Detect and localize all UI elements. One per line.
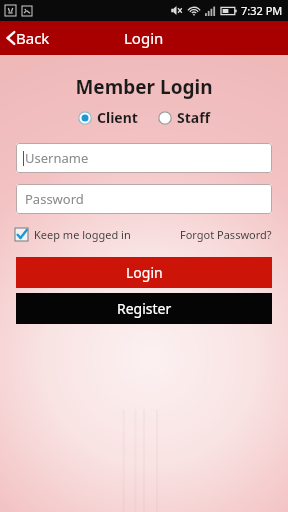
button[interactable]: Login (16, 257, 272, 288)
staticText: Forgot Password? (180, 227, 272, 242)
staticText: Username (25, 149, 89, 167)
staticText: Login (124, 28, 164, 48)
button[interactable]: Username (16, 143, 272, 173)
button[interactable]: Register (16, 293, 272, 324)
button[interactable]: Back (0, 24, 60, 52)
staticText: Password (25, 190, 84, 208)
staticText: Member Login (0, 74, 288, 100)
staticText: 7:32 PM (241, 3, 283, 18)
button[interactable]: Client (76, 106, 140, 129)
staticText: Keep me logged in (34, 227, 131, 242)
staticText: Back (16, 28, 50, 48)
staticText: Register (117, 299, 172, 318)
button[interactable]: Forgot Password? (179, 224, 273, 245)
button[interactable]: Keep me logged in (15, 225, 131, 244)
button[interactable]: Password (16, 184, 272, 214)
staticText: Login (126, 263, 163, 282)
staticText: Staff (177, 108, 210, 127)
button[interactable]: Staff (156, 106, 212, 129)
staticText: Client (97, 108, 138, 127)
